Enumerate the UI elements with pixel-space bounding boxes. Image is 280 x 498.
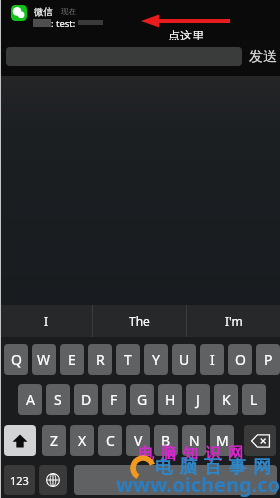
staticText: : test: [51,17,76,30]
staticText: K [222,390,231,409]
staticText: I'm [225,313,243,329]
staticText: I [44,313,49,329]
staticText: S [54,390,62,409]
button[interactable]: G [130,384,154,415]
staticText: Q [11,350,22,369]
staticText: Z [50,431,59,450]
staticText: B [161,431,171,450]
button[interactable]: K [214,384,238,415]
button[interactable]: A [18,384,42,415]
button[interactable]: V [126,425,150,456]
button[interactable]: S [46,384,70,415]
staticText: 现在 [61,7,76,16]
staticText: L [250,390,258,409]
button[interactable]: N [182,425,206,456]
button[interactable]: T [116,344,140,375]
button[interactable]: D [74,384,98,415]
staticText: U [179,350,190,369]
staticText: The [129,313,150,329]
staticText: E [68,350,76,369]
staticText: 点这里 [168,28,204,43]
staticText: V [134,431,143,450]
staticText: 发送 [249,48,277,66]
staticText: 电脑知识网 [138,444,250,464]
staticText: N [189,431,200,450]
button[interactable]: H [158,384,182,415]
staticText: W [37,350,51,369]
staticText: X [78,431,87,450]
button[interactable]: 123 [4,465,35,495]
staticText: 微信 [34,6,53,18]
staticText: 123 [10,473,29,488]
staticText: A [26,390,35,409]
button[interactable]: W [32,344,56,375]
staticText: P [264,350,273,369]
button[interactable]: I'm [187,305,280,337]
button[interactable]: WeChat [11,5,27,21]
button[interactable]: J [186,384,210,415]
staticText: O [235,350,246,369]
staticText: F [110,390,118,409]
staticText: R [96,350,105,369]
button[interactable]: I [0,305,92,337]
button[interactable]: E [60,344,84,375]
staticText: M [216,431,229,450]
staticText: H [165,390,176,409]
button[interactable]: Backspace [244,425,276,456]
button[interactable]: Shift [4,425,36,456]
staticText: T [124,350,132,369]
button[interactable]: Space [74,465,277,495]
button[interactable]: O [228,344,252,375]
staticText: G [137,390,148,409]
button[interactable]: 发送 [247,45,278,69]
button[interactable]: P [256,344,280,375]
button[interactable]: I [200,344,224,375]
staticText: www.oicheng.com [116,471,280,498]
button[interactable]: The [93,305,186,337]
staticText: C [106,431,115,450]
staticText: D [81,390,92,409]
button[interactable]: L [242,384,266,415]
button[interactable]: C [98,425,122,456]
button[interactable]: X [70,425,94,456]
staticText: I [210,350,215,369]
button[interactable]: R [88,344,112,375]
button[interactable]: Z [42,425,66,456]
button[interactable]: B [154,425,178,456]
button[interactable]: F [102,384,126,415]
staticText: Y [152,350,160,369]
staticText: J [196,390,200,409]
button[interactable]: M [210,425,234,456]
button[interactable]: U [172,344,196,375]
staticText: 电脑百事网 [155,456,278,479]
button[interactable]: Q [4,344,28,375]
button[interactable]: Switch keyboard [39,465,67,495]
button[interactable]: Y [144,344,168,375]
